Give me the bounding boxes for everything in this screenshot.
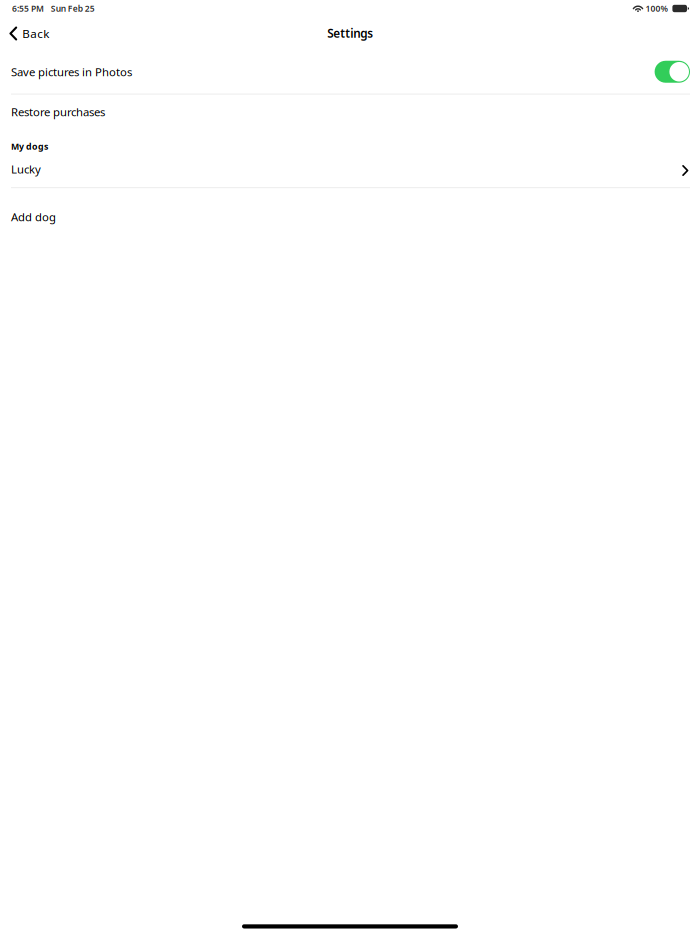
button[interactable]: Back bbox=[0, 17, 57, 50]
button[interactable]: Restore purchases bbox=[0, 95, 700, 129]
staticText: Back bbox=[22, 26, 49, 41]
staticText: Add dog bbox=[11, 209, 56, 224]
staticText: Lucky bbox=[11, 161, 41, 177]
staticText: Save pictures in Photos bbox=[11, 64, 132, 79]
staticText: My dogs bbox=[11, 140, 48, 152]
staticText: 100% bbox=[646, 3, 668, 14]
button[interactable]: Lucky bbox=[0, 161, 700, 187]
button[interactable]: Save pictures in Photos bbox=[655, 61, 690, 83]
staticText: Sun Feb 25 bbox=[51, 3, 95, 14]
staticText: Restore purchases bbox=[11, 104, 105, 120]
staticText: Settings bbox=[327, 25, 373, 41]
button[interactable]: Add dog bbox=[0, 188, 700, 245]
staticText: 6:55 PM bbox=[12, 3, 44, 14]
